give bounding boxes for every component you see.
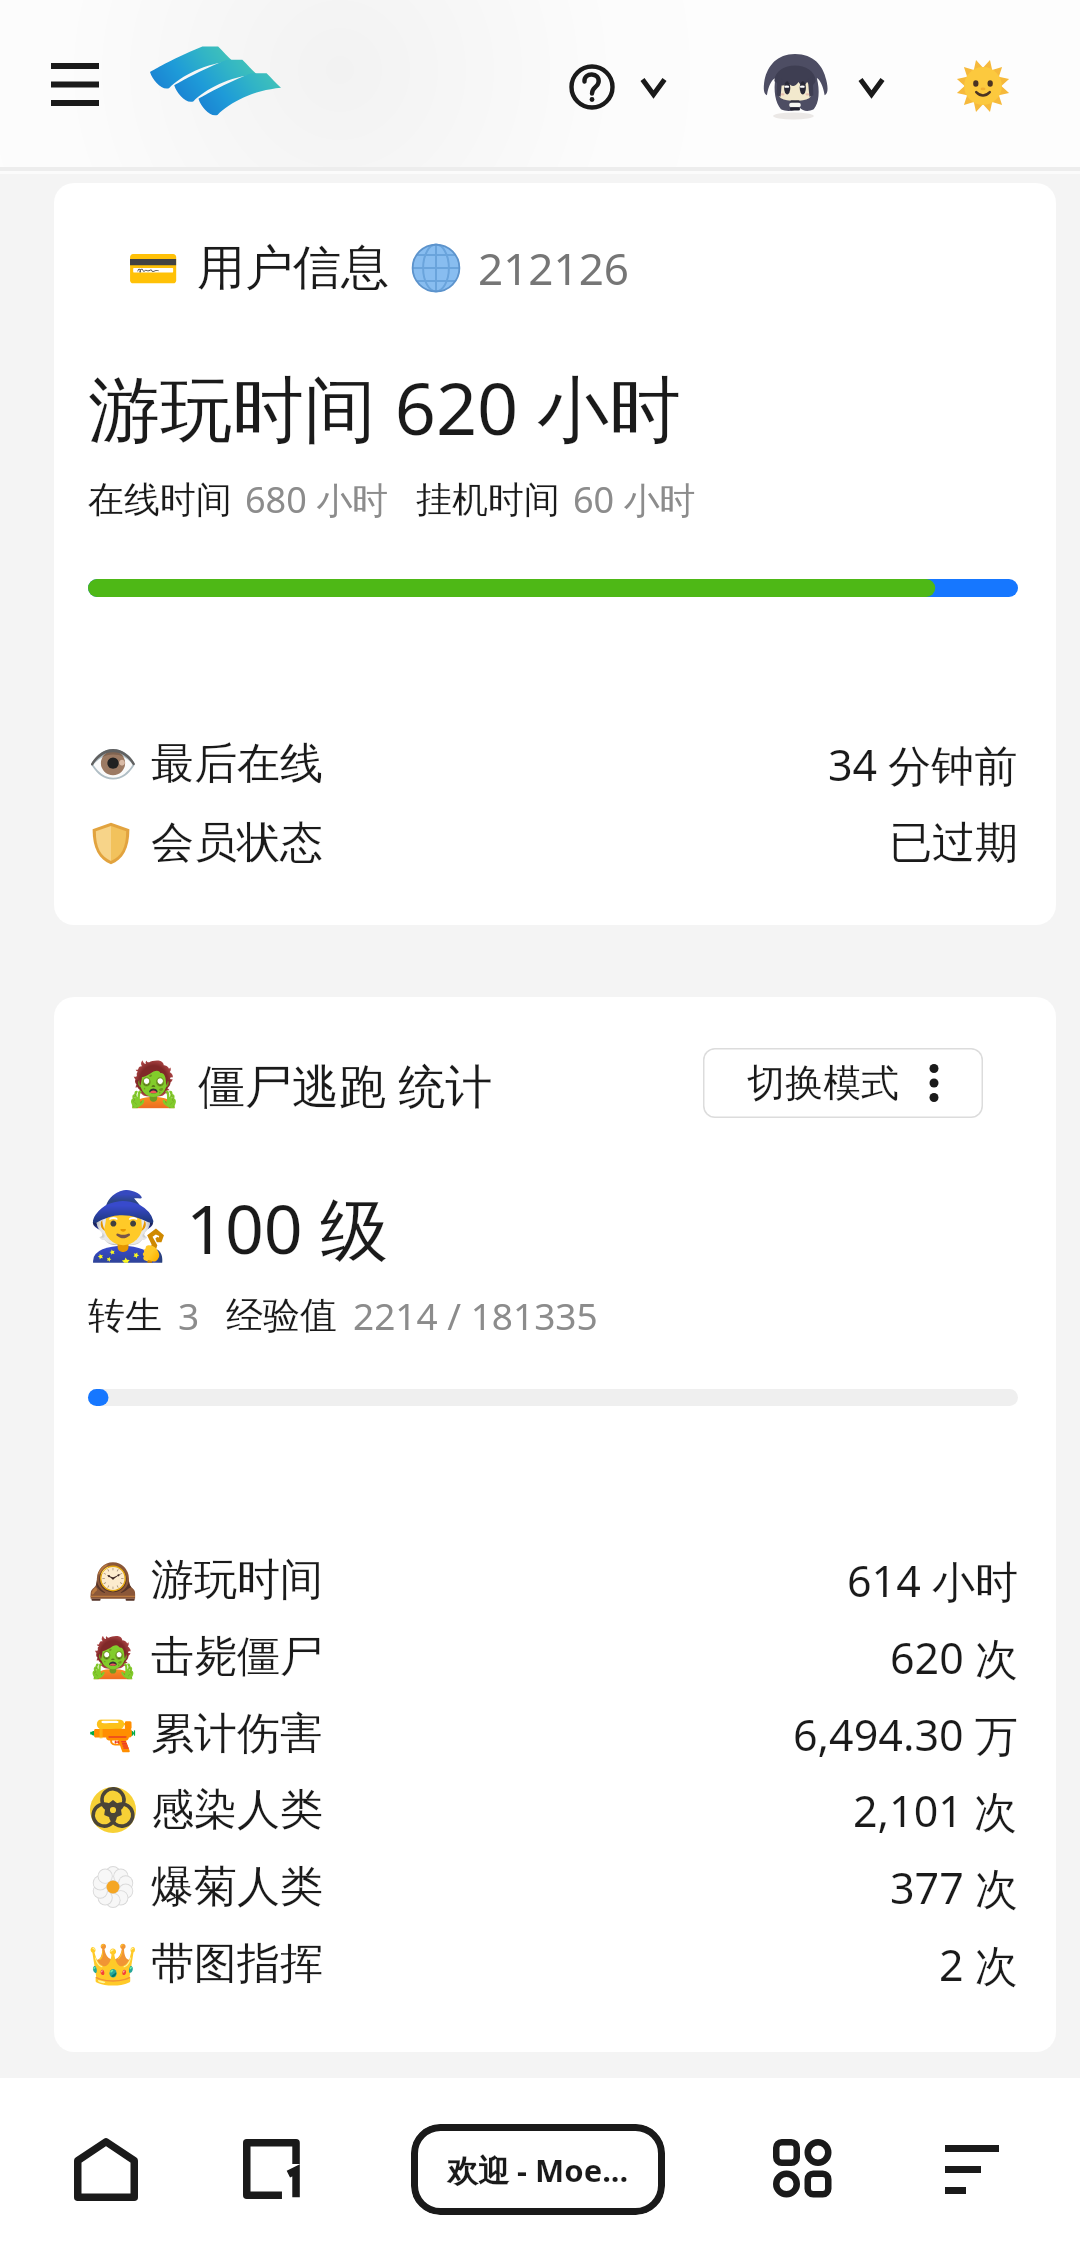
- staticText: 爆菊人类: [151, 1860, 323, 1914]
- staticText: 击毙僵尸: [151, 1630, 323, 1684]
- button[interactable]: 欢迎 - Moe...: [411, 2124, 665, 2215]
- staticText: 欢迎 - Moe...: [447, 2149, 629, 2191]
- staticText: 累计伤害: [151, 1707, 323, 1761]
- staticText: 620 次: [890, 1628, 1018, 1687]
- staticText: 212126: [478, 238, 630, 298]
- staticText: 3: [178, 1290, 200, 1340]
- staticText: 感染人类: [151, 1783, 323, 1837]
- staticText: 🧟: [126, 1058, 181, 1110]
- staticText: 377 次: [890, 1858, 1018, 1917]
- staticText: 680 小时: [245, 475, 389, 524]
- staticText: 游玩时间 620 小时: [88, 358, 681, 456]
- button[interactable]: 💳: [54, 183, 1056, 925]
- staticText: 带图指挥: [151, 1937, 323, 1991]
- button[interactable]: 🧟: [88, 1626, 1018, 1688]
- button[interactable]: 🔫: [88, 1703, 1018, 1765]
- button[interactable]: 切换模式: [703, 1048, 983, 1118]
- button[interactable]: Help: [548, 43, 636, 131]
- button[interactable]: Weather: [943, 46, 1023, 126]
- staticText: 100 级: [186, 1181, 389, 1271]
- staticText: 🕰: [88, 1557, 138, 1604]
- staticText: 👑: [88, 1941, 138, 1988]
- staticText: 在线时间: [88, 477, 232, 522]
- staticText: 僵尸逃跑 统计: [198, 1053, 493, 1115]
- staticText: 最后在线: [151, 737, 323, 791]
- staticText: 会员状态: [151, 816, 323, 870]
- staticText: 👁: [88, 741, 138, 788]
- button[interactable]: 👑: [88, 1933, 1018, 1995]
- button[interactable]: Tabs: [231, 2127, 315, 2211]
- button[interactable]: Account menu: [840, 58, 902, 116]
- button[interactable]: Account: [754, 48, 836, 130]
- button[interactable]: Apps: [762, 2127, 846, 2211]
- staticText: 34 分钟前: [828, 735, 1018, 794]
- staticText: 已过期: [889, 816, 1018, 870]
- button[interactable]: 会员状态: [88, 812, 1018, 874]
- button[interactable]: 👁: [88, 733, 1018, 795]
- staticText: 6,494.30 万: [793, 1705, 1018, 1764]
- button[interactable]: 爆菊人类: [88, 1856, 1018, 1918]
- staticText: 614 小时: [847, 1551, 1018, 1610]
- staticText: 🧙: [87, 1188, 170, 1265]
- staticText: 2,101 次: [853, 1781, 1018, 1840]
- button[interactable]: Menu: [27, 40, 123, 128]
- staticText: 切换模式: [747, 1059, 899, 1107]
- staticText: 游玩时间: [151, 1553, 323, 1607]
- staticText: 转生: [88, 1292, 162, 1339]
- staticText: 🧟: [88, 1634, 138, 1681]
- staticText: 60 小时: [573, 475, 696, 524]
- button[interactable]: 🧟: [54, 997, 1056, 2052]
- button[interactable]: Home: [64, 2127, 148, 2211]
- staticText: 用户信息: [197, 238, 389, 298]
- button[interactable]: More: [933, 2133, 1011, 2205]
- staticText: 🔫: [88, 1711, 138, 1758]
- staticText: 2214 / 181335: [353, 1290, 598, 1340]
- button[interactable]: Help menu: [622, 58, 684, 116]
- button[interactable]: 🕰: [88, 1549, 1018, 1611]
- staticText: 2 次: [939, 1935, 1018, 1994]
- staticText: 💳: [127, 244, 180, 293]
- staticText: 挂机时间: [416, 477, 560, 522]
- button[interactable]: 感染人类: [88, 1779, 1018, 1841]
- staticText: 经验值: [226, 1292, 337, 1339]
